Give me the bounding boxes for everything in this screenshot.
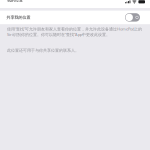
staticText: 此位置还可用于与你共享位置的联系人。 [7,48,79,53]
staticText: 使用“查找”可允许朋友和家人查看你的位置，并允许此设备通过HomePod上的Si… [7,26,142,37]
button[interactable]: 共享我的位置 [0,11,150,24]
staticText: 我的位置 [7,0,23,3]
staticText: 共享我的位置 [7,15,31,20]
